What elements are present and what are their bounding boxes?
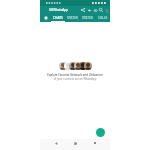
staticText: STATUS xyxy=(82,16,94,20)
button[interactable]: Camera xyxy=(92,7,98,13)
staticText: STATUS xyxy=(67,16,79,20)
button[interactable]: Back xyxy=(52,139,60,147)
button[interactable]: CALLS xyxy=(95,14,110,22)
staticText: GBWhatsApp xyxy=(49,8,68,12)
button[interactable]: Search xyxy=(98,7,104,13)
button[interactable]: Home xyxy=(71,139,79,147)
button[interactable]: New chat xyxy=(96,128,105,137)
button[interactable]: Recents xyxy=(91,139,99,147)
button[interactable]: More options xyxy=(104,8,109,13)
staticText: of your contacts are on WhatsApp xyxy=(43,77,107,81)
staticText: CALLS xyxy=(98,16,108,20)
button[interactable]: STATUS xyxy=(80,14,95,22)
button[interactable]: Share xyxy=(80,7,86,13)
button[interactable]: Camera xyxy=(40,14,51,22)
button[interactable]: Call xyxy=(86,7,92,13)
staticText: Explore Favorite Network and Utilization xyxy=(43,73,107,77)
button[interactable]: STATUS xyxy=(65,14,80,22)
staticText: CHATS xyxy=(53,16,63,20)
button[interactable]: CHATS xyxy=(51,14,65,22)
